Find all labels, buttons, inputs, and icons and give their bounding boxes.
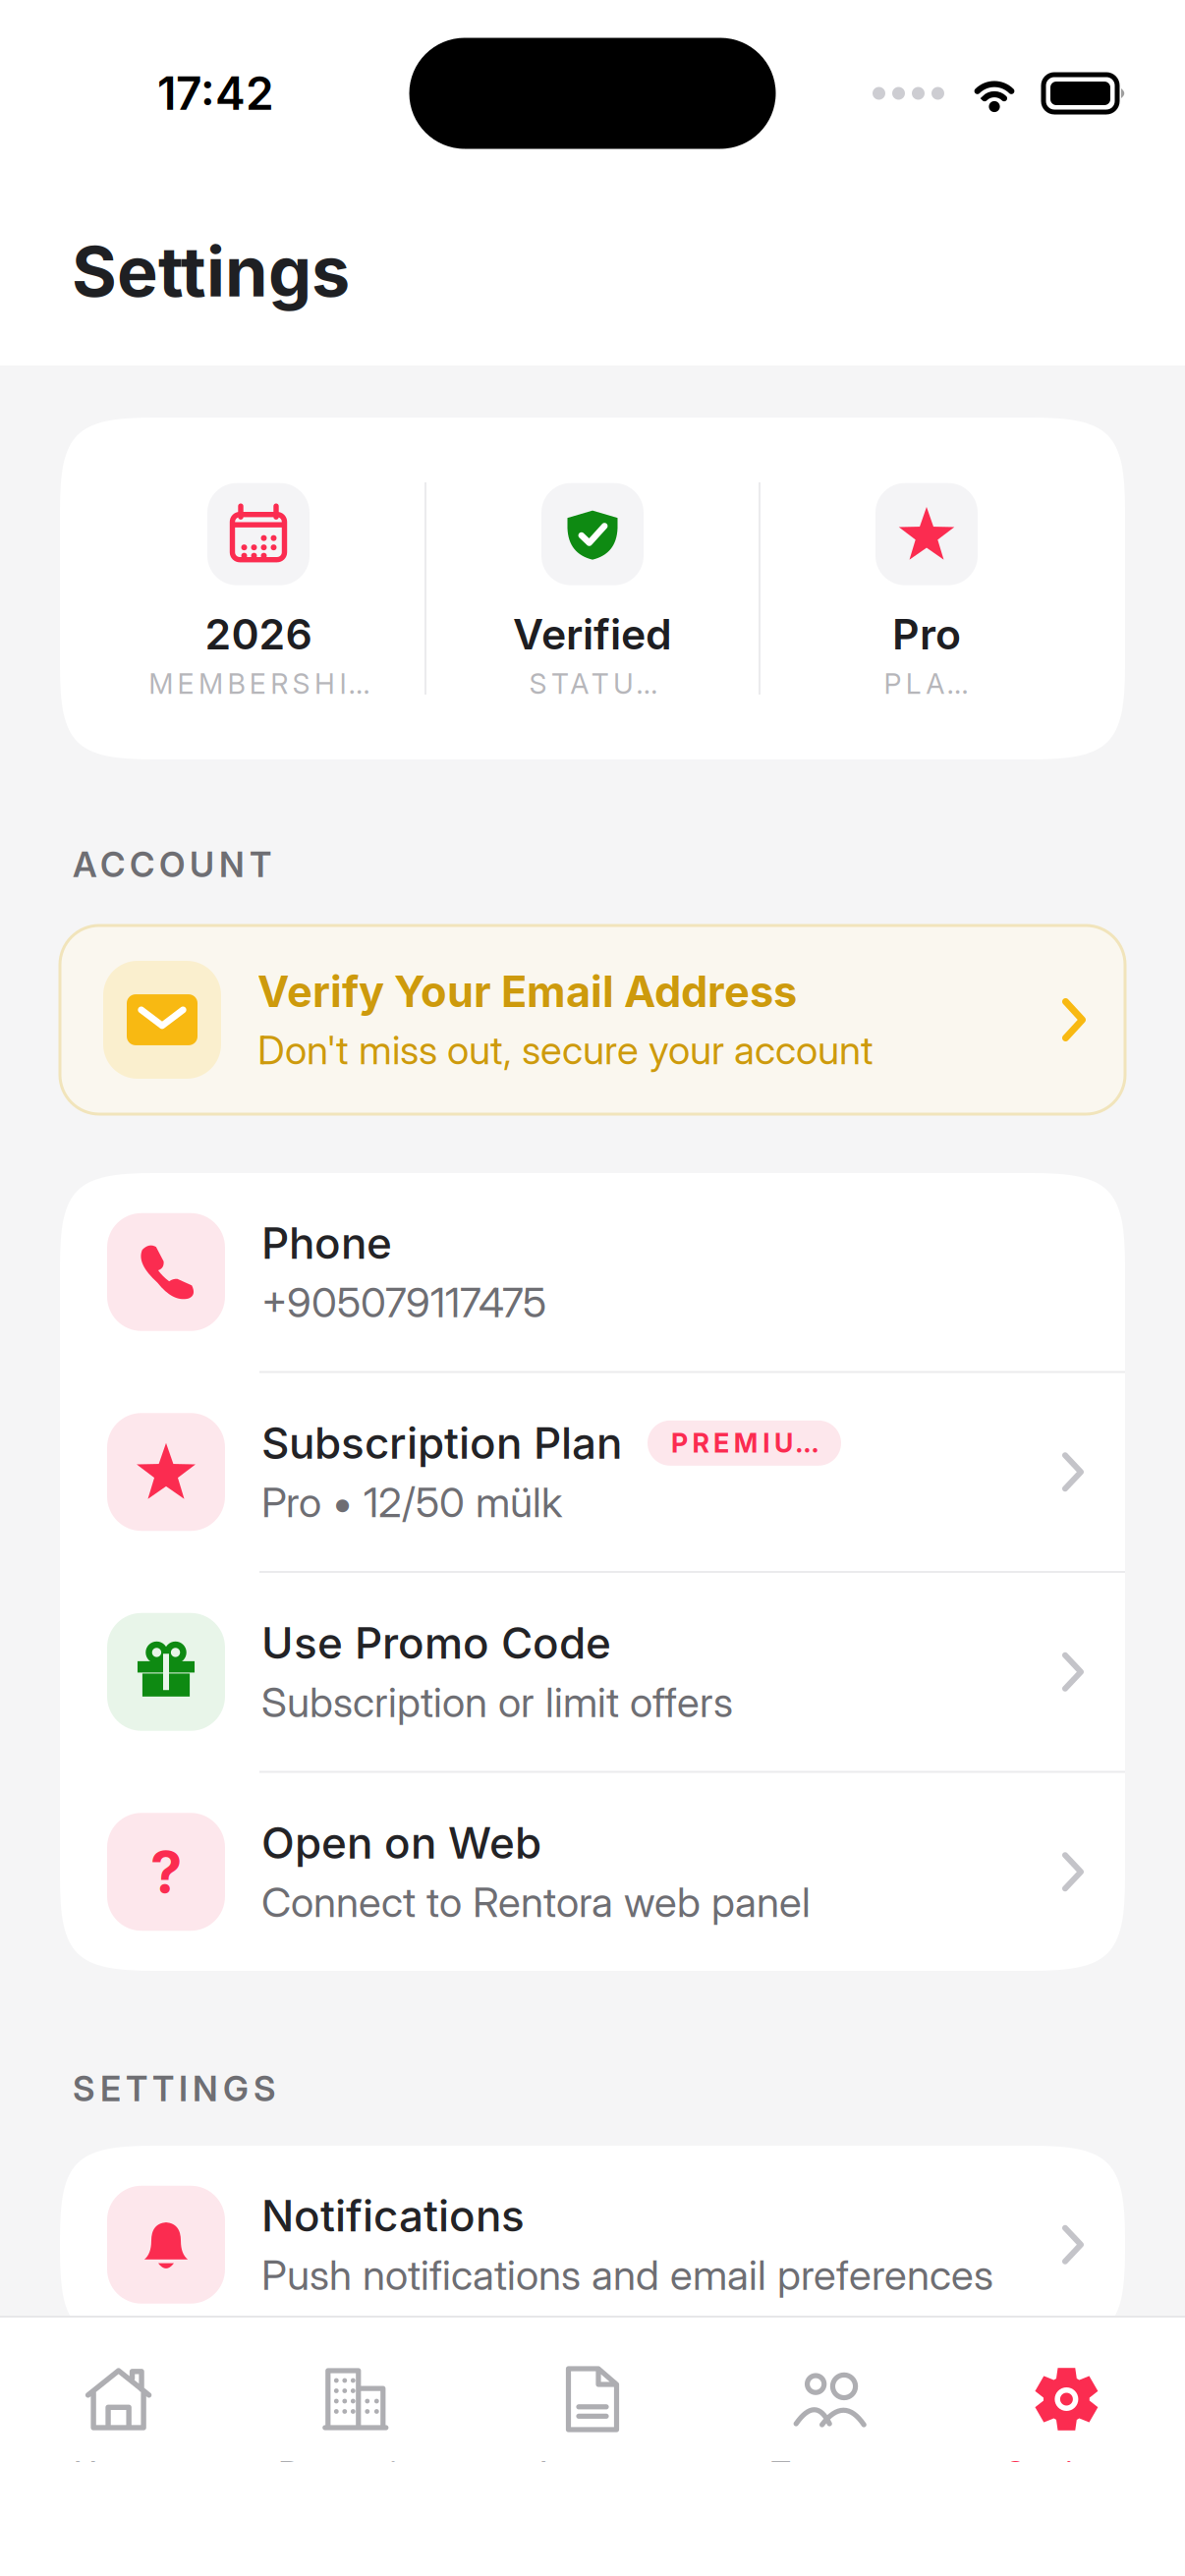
staticText: Verify Your Email Address <box>257 966 797 1017</box>
button[interactable]: Leases <box>474 2318 711 2514</box>
staticText: Pro <box>892 609 961 660</box>
staticText: Subscription Plan <box>261 1417 622 1469</box>
button[interactable]: Home <box>0 2318 237 2514</box>
staticText: Phone <box>261 1217 392 1269</box>
staticText: Pro • 12/50 mülk <box>261 1477 562 1527</box>
staticText: PLAN <box>872 667 982 701</box>
staticText: Settings <box>72 230 350 313</box>
staticText: Open on Web <box>261 1817 541 1869</box>
staticText: Subscription or limit offers <box>261 1677 733 1727</box>
staticText: PREMIUM <box>661 1427 828 1459</box>
staticText: Use Promo Code <box>261 1617 611 1669</box>
button[interactable]: Settings <box>948 2318 1185 2514</box>
button[interactable]: Phone <box>60 1173 1125 1371</box>
button[interactable]: Subscription Plan <box>60 1373 1125 1571</box>
staticText: SETTINGS <box>73 2068 289 2109</box>
staticText: Home <box>74 2453 163 2492</box>
staticText: 17:42 <box>157 66 274 121</box>
staticText: Tenants <box>771 2453 888 2492</box>
button[interactable]: Use Promo Code <box>60 1573 1125 1771</box>
staticText: Push notifications and email preferences <box>261 2250 993 2300</box>
staticText: Verified <box>513 609 672 660</box>
staticText: ? <box>150 1837 182 1906</box>
staticText: MEMBERSHIP <box>136 667 380 701</box>
staticText: Notifications <box>261 2190 525 2242</box>
staticText: Properties <box>278 2453 433 2492</box>
staticText: Don't miss out, secure your account <box>257 1026 874 1074</box>
staticText: ACCOUNT <box>73 844 284 885</box>
staticText: Settings <box>1005 2453 1128 2492</box>
staticText: +905079117475 <box>261 1277 546 1327</box>
button[interactable]: ? <box>60 1773 1125 1971</box>
button[interactable]: Notifications <box>60 2146 1125 2344</box>
staticText: 2026 <box>205 609 312 660</box>
button[interactable]: Verify Your Email Address <box>60 925 1125 1114</box>
button[interactable]: Properties <box>237 2318 474 2514</box>
staticText: Connect to Rentora web panel <box>261 1877 811 1927</box>
staticText: STATUS <box>517 667 668 701</box>
button[interactable]: Tenants <box>711 2318 948 2514</box>
